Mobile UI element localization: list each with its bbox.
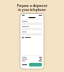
staticText: in your telephone: [18, 8, 46, 12]
staticText: Prepare a shipment: [17, 4, 47, 8]
button[interactable]: [29, 63, 42, 66]
